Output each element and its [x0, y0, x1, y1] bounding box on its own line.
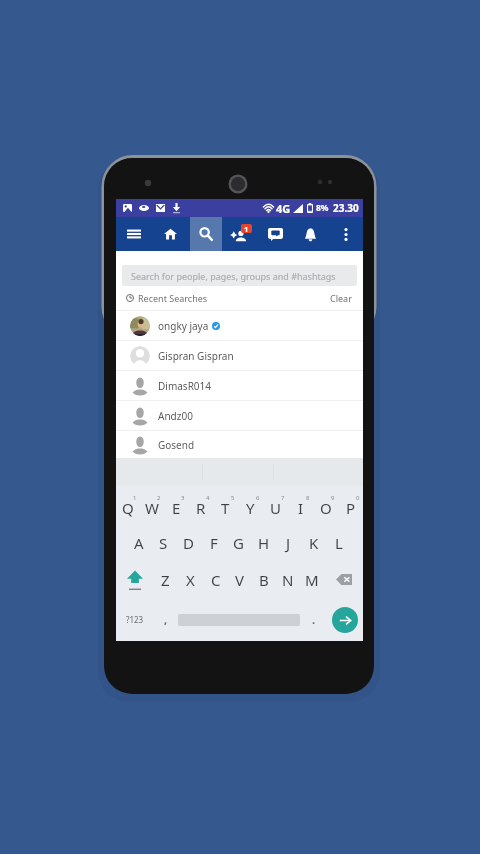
staticText: K: [309, 533, 319, 553]
staticText: I: [298, 498, 304, 518]
staticText: X: [186, 570, 195, 590]
staticText: B: [259, 570, 269, 590]
staticText: Gispran Gispran: [158, 349, 234, 363]
staticText: Search for people, pages, groups and #ha…: [131, 270, 336, 282]
button[interactable]: M: [300, 561, 324, 598]
button[interactable]: Clear: [330, 292, 352, 304]
staticText: 3: [181, 494, 185, 502]
button[interactable]: V: [228, 561, 252, 598]
staticText: N: [282, 570, 294, 590]
staticText: G: [233, 533, 244, 553]
button[interactable]: 2: [140, 486, 164, 525]
button[interactable]: Z: [153, 561, 178, 598]
staticText: O: [320, 498, 332, 518]
button[interactable]: Backspace: [324, 561, 363, 598]
button[interactable]: 5: [213, 486, 238, 525]
button[interactable]: N: [276, 561, 300, 598]
staticText: S: [159, 533, 168, 553]
staticText: ?123: [126, 614, 144, 625]
staticText: P: [346, 498, 356, 518]
button[interactable]: X: [178, 561, 203, 598]
button[interactable]: Search: [326, 598, 363, 641]
button[interactable]: C: [203, 561, 228, 598]
staticText: .: [312, 612, 316, 627]
button[interactable]: ,: [154, 598, 177, 641]
button[interactable]: Shift: [116, 561, 153, 598]
button[interactable]: Messages: [258, 217, 293, 251]
staticText: C: [211, 570, 221, 590]
button[interactable]: Home: [152, 217, 188, 251]
staticText: E: [172, 498, 181, 518]
staticText: U: [270, 498, 281, 518]
staticText: V: [235, 570, 245, 590]
staticText: 1: [133, 494, 137, 502]
staticText: T: [221, 498, 230, 518]
staticText: R: [196, 498, 206, 518]
button[interactable]: S: [151, 525, 176, 561]
button[interactable]: 7: [263, 486, 288, 525]
button[interactable]: G: [226, 525, 251, 561]
button[interactable]: 0: [338, 486, 363, 525]
staticText: Andz00: [158, 409, 193, 423]
button[interactable]: Space: [177, 598, 301, 641]
staticText: ,: [164, 612, 168, 627]
staticText: Gosend: [158, 438, 195, 452]
staticText: F: [210, 533, 218, 553]
button[interactable]: 4: [188, 486, 213, 525]
button[interactable]: Notifications: [293, 217, 328, 251]
button[interactable]: Menu: [116, 217, 152, 251]
button[interactable]: More options: [328, 217, 363, 251]
button[interactable]: ongky jaya: [116, 311, 363, 340]
staticText: M: [305, 570, 319, 590]
button[interactable]: 8: [288, 486, 313, 525]
staticText: H: [258, 533, 270, 553]
staticText: Y: [246, 498, 255, 518]
button[interactable]: F: [201, 525, 226, 561]
button[interactable]: 1: [116, 486, 140, 525]
button[interactable]: 6: [238, 486, 263, 525]
button[interactable]: ?123: [116, 598, 154, 641]
staticText: Q: [122, 498, 134, 518]
staticText: 8%: [316, 202, 329, 214]
button[interactable]: Gispran Gispran: [116, 341, 363, 370]
button[interactable]: .: [301, 598, 326, 641]
staticText: W: [145, 498, 159, 518]
button[interactable]: Friend requests: [223, 217, 258, 251]
staticText: 6: [256, 494, 260, 502]
button[interactable]: B: [252, 561, 276, 598]
staticText: Recent Searches: [138, 292, 208, 304]
staticText: 5: [231, 494, 235, 502]
button[interactable]: Search: [188, 217, 223, 251]
button[interactable]: Gosend: [116, 431, 363, 458]
button[interactable]: DimasR014: [116, 371, 363, 400]
staticText: 8: [306, 494, 310, 502]
staticText: 4G: [276, 201, 291, 216]
button[interactable]: L: [326, 525, 351, 561]
staticText: 4: [206, 494, 210, 502]
staticText: 0: [356, 494, 360, 502]
button[interactable]: Search for people, pages, groups and #ha…: [122, 265, 357, 286]
staticText: A: [134, 533, 144, 553]
staticText: Z: [161, 570, 170, 590]
staticText: DimasR014: [158, 379, 212, 393]
button[interactable]: K: [301, 525, 326, 561]
button[interactable]: H: [251, 525, 276, 561]
staticText: J: [286, 533, 291, 553]
button[interactable]: 9: [313, 486, 338, 525]
button[interactable]: Andz00: [116, 401, 363, 430]
staticText: 23.30: [333, 201, 359, 215]
button[interactable]: 3: [164, 486, 188, 525]
button[interactable]: D: [176, 525, 201, 561]
staticText: 9: [331, 494, 335, 502]
staticText: D: [183, 533, 194, 553]
staticText: 1: [244, 224, 249, 233]
button[interactable]: J: [276, 525, 301, 561]
staticText: ongky jaya: [158, 319, 209, 333]
staticText: 2: [157, 494, 161, 502]
button[interactable]: A: [127, 525, 151, 561]
staticText: L: [335, 533, 343, 553]
staticText: 7: [281, 494, 285, 502]
